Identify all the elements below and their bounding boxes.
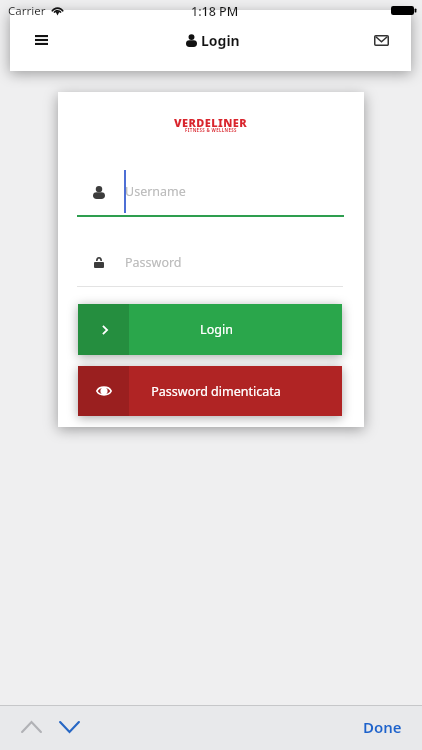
other: Log in — [102, 325, 108, 335]
staticText: 1:18 PM — [191, 3, 239, 20]
button[interactable] — [77, 170, 344, 217]
button[interactable]: Open navigation menu — [10, 10, 72, 71]
button[interactable]: Done — [363, 705, 402, 749]
button[interactable]: Messages — [349, 10, 411, 71]
staticText: VERDELINER — [174, 115, 248, 130]
staticText: Carrier — [8, 3, 46, 19]
staticText: FITNESS & WELLNESS — [185, 127, 237, 133]
button[interactable]: Show password — [78, 366, 342, 416]
button[interactable]: Log in — [78, 304, 342, 355]
staticText: Login — [201, 31, 240, 50]
button[interactable]: Next field — [51, 705, 87, 749]
staticText: Password dimenticata — [151, 383, 281, 400]
staticText: Login — [200, 321, 233, 338]
button[interactable] — [77, 241, 344, 288]
staticText: Done — [363, 717, 402, 737]
button[interactable]: Previous field — [13, 705, 49, 749]
staticText: Password — [125, 254, 182, 271]
other: Show password — [96, 385, 112, 397]
staticText: Username — [125, 183, 186, 200]
